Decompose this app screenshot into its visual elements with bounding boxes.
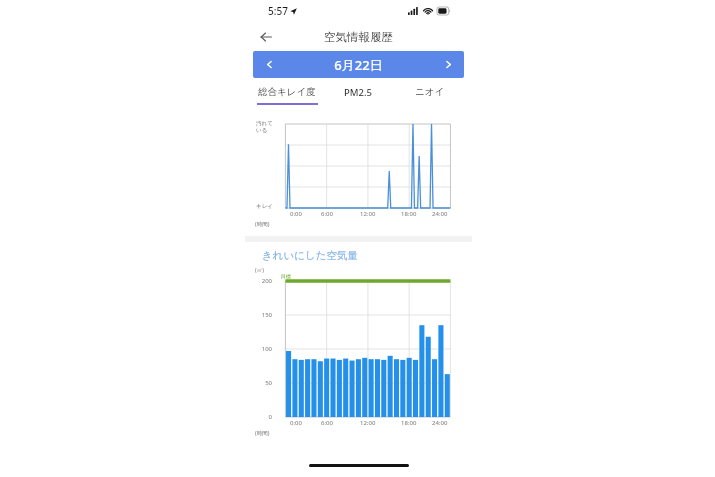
staticText: PM2.5 [344, 86, 372, 99]
button[interactable]: ニオイ [394, 81, 466, 103]
staticText: キレイ [256, 203, 273, 210]
button[interactable]: PM2.5 [322, 81, 394, 103]
staticText: ニオイ [415, 86, 445, 98]
staticText: 12:00 [360, 419, 376, 427]
staticText: 汚れて [256, 120, 273, 127]
staticText: 総合キレイ度 [258, 86, 316, 98]
staticText: (㎥) [255, 266, 264, 274]
button[interactable]: Previous day [253, 51, 285, 78]
staticText: 24:00 [432, 419, 448, 427]
staticText: 24:00 [432, 210, 448, 218]
button[interactable]: 総合キレイ度 [251, 81, 322, 103]
staticText: 0:00 [290, 419, 302, 427]
staticText: 100 [245, 345, 272, 353]
staticText: 12:00 [360, 210, 376, 218]
staticText: 18:00 [401, 419, 417, 427]
staticText: 18:00 [401, 210, 417, 218]
staticText: 0 [245, 413, 272, 421]
button[interactable]: Back [253, 24, 279, 50]
button[interactable]: Next day [432, 51, 464, 78]
staticText: 6:00 [321, 210, 333, 218]
staticText: 5:57 [268, 4, 288, 18]
staticText: (時間) [255, 220, 270, 228]
staticText: 目標 [281, 273, 291, 279]
staticText: いる [256, 127, 268, 134]
staticText: 空気情報履歴 [324, 30, 393, 44]
staticText: 200 [245, 277, 272, 285]
staticText: 0:00 [290, 210, 302, 218]
staticText: 150 [245, 311, 272, 319]
staticText: 6月22日 [285, 56, 432, 74]
staticText: きれいにした空気量 [262, 249, 358, 262]
staticText: (時間) [255, 429, 270, 437]
staticText: 6:00 [321, 419, 333, 427]
staticText: 50 [245, 379, 272, 387]
